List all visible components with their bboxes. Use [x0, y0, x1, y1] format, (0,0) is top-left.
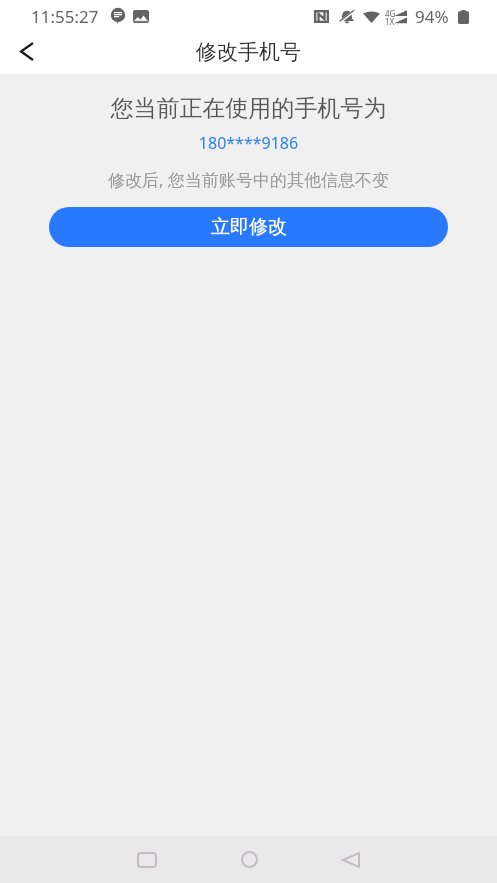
staticText: 您当前正在使用的手机号为 — [0, 94, 497, 123]
button[interactable]: 立即修改 — [49, 207, 448, 247]
button[interactable]: Home — [225, 836, 273, 883]
staticText: 修改后, 您当前账号中的其他信息不变 — [0, 168, 497, 191]
button[interactable]: Back — [327, 836, 375, 883]
button[interactable]: Back — [3, 29, 51, 74]
staticText: 4G — [385, 8, 396, 19]
staticText: 立即修改 — [211, 215, 287, 239]
staticText: 180****9186 — [0, 132, 497, 154]
staticText: 修改手机号 — [196, 39, 301, 65]
staticText: 1X — [385, 16, 395, 27]
button[interactable]: Recent apps — [123, 836, 171, 883]
staticText: 11:55:27 — [31, 5, 99, 28]
staticText: 94% — [415, 5, 449, 28]
